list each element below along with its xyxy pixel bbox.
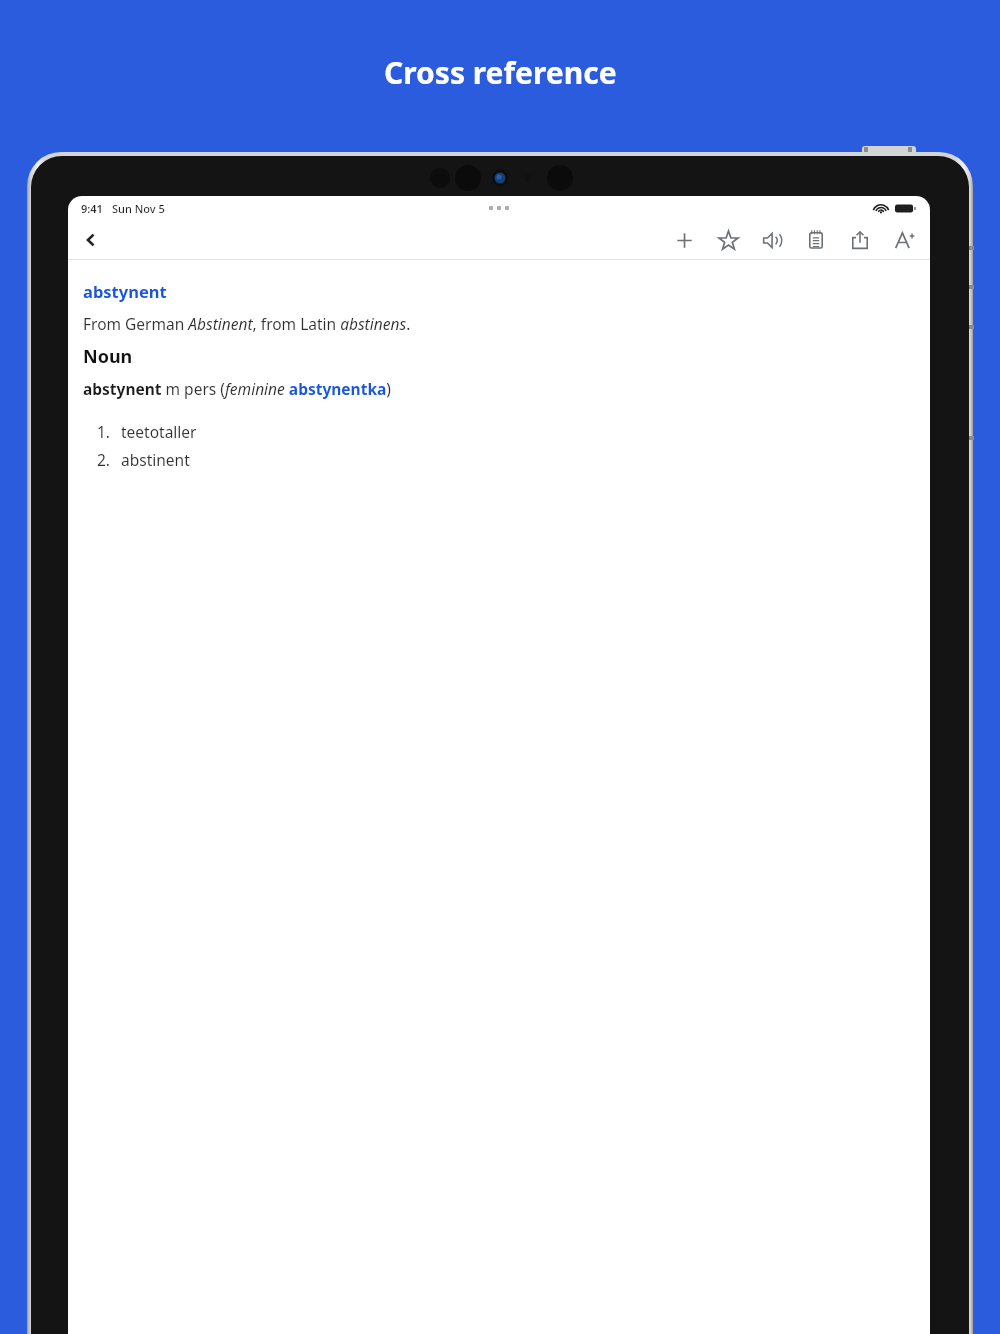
button[interactable]: Favourite bbox=[712, 224, 744, 256]
button[interactable]: Share bbox=[844, 224, 876, 256]
staticText: 1. bbox=[97, 421, 111, 442]
button[interactable]: Back bbox=[74, 223, 108, 257]
staticText: Noun bbox=[83, 344, 133, 369]
button[interactable]: abstynent m pers (feminine abstynentka) bbox=[83, 378, 391, 399]
staticText: teetotaller bbox=[121, 421, 197, 442]
button[interactable]: abstynent bbox=[83, 280, 167, 302]
staticText: From German Abstinent, from Latin abstin… bbox=[83, 313, 411, 334]
staticText: Sun Nov 5 bbox=[112, 201, 165, 216]
staticText: 9:41 bbox=[81, 201, 103, 216]
staticText: Cross reference bbox=[384, 52, 617, 93]
button[interactable]: Add bbox=[668, 224, 700, 256]
staticText: 2. bbox=[97, 449, 111, 470]
staticText: abstinent bbox=[121, 449, 190, 470]
button[interactable]: Text size bbox=[888, 224, 920, 256]
button[interactable]: Notes bbox=[800, 224, 832, 256]
button[interactable]: Pronounce bbox=[756, 224, 788, 256]
